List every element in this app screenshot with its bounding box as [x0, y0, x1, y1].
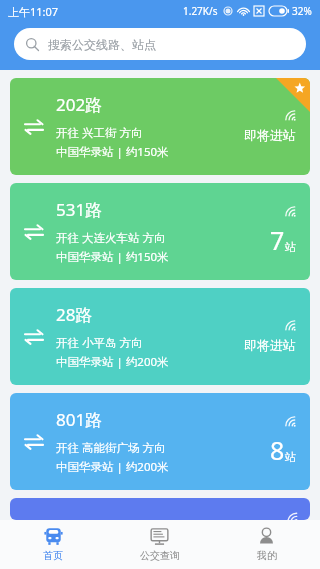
button[interactable]: 28路 [10, 288, 310, 385]
button[interactable]: 搜索公交线路、站点 [14, 28, 306, 60]
button[interactable]: 801路 [10, 393, 310, 490]
button[interactable]: 首页 [0, 520, 106, 569]
other: 我的 [257, 527, 276, 546]
staticText: 即将进站 [244, 337, 296, 353]
staticText: 531路 [56, 198, 103, 221]
button[interactable]: 我的 [213, 520, 320, 569]
staticText: 中国华录站 | 约200米 [56, 459, 169, 475]
button[interactable]: 202路 [10, 78, 310, 175]
staticText: 即将进站 [244, 127, 296, 143]
button[interactable]: 531路 [10, 183, 310, 280]
staticText: 中国华录站 | 约150米 [56, 249, 169, 265]
staticText: 801路 [56, 408, 103, 431]
staticText: 1.27K/s [183, 4, 218, 18]
staticText: 开往 兴工街 方向 [56, 125, 143, 141]
staticText: 中国华录站 | 约150米 [56, 144, 169, 160]
staticText: 中国华录站 | 约200米 [56, 354, 169, 370]
staticText: 开往 大连火车站 方向 [56, 230, 166, 246]
staticText: 28路 [56, 303, 93, 326]
staticText: 站 [285, 240, 296, 254]
staticText: 上午11:07 [8, 4, 59, 19]
staticText: 8 [270, 433, 285, 467]
staticText: 首页 [43, 549, 63, 562]
staticText: 32% [292, 4, 312, 18]
other: 公交查询 [150, 527, 169, 546]
other: 首页 [44, 527, 63, 546]
staticText: 202路 [56, 93, 103, 116]
staticText: 开往 小平岛 方向 [56, 335, 143, 351]
staticText: 开往 高能街广场 方向 [56, 440, 166, 456]
button[interactable]: 公交查询 [106, 520, 213, 569]
staticText: 7 [270, 223, 285, 257]
staticText: 搜索公交线路、站点 [48, 37, 156, 52]
staticText: 我的 [257, 549, 277, 562]
staticText: 站 [285, 450, 296, 464]
staticText: 公交查询 [140, 549, 180, 562]
button[interactable]: 9路 [10, 498, 310, 520]
